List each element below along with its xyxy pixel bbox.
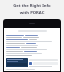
button[interactable]: Open [6, 58, 58, 67]
button[interactable]: Open [29, 62, 32, 65]
staticText: with PORAC [0, 10, 64, 16]
staticText: Get the Right Info [0, 3, 64, 9]
button[interactable]: Address bar [6, 29, 58, 32]
button[interactable]: Address bar [3, 19, 61, 72]
